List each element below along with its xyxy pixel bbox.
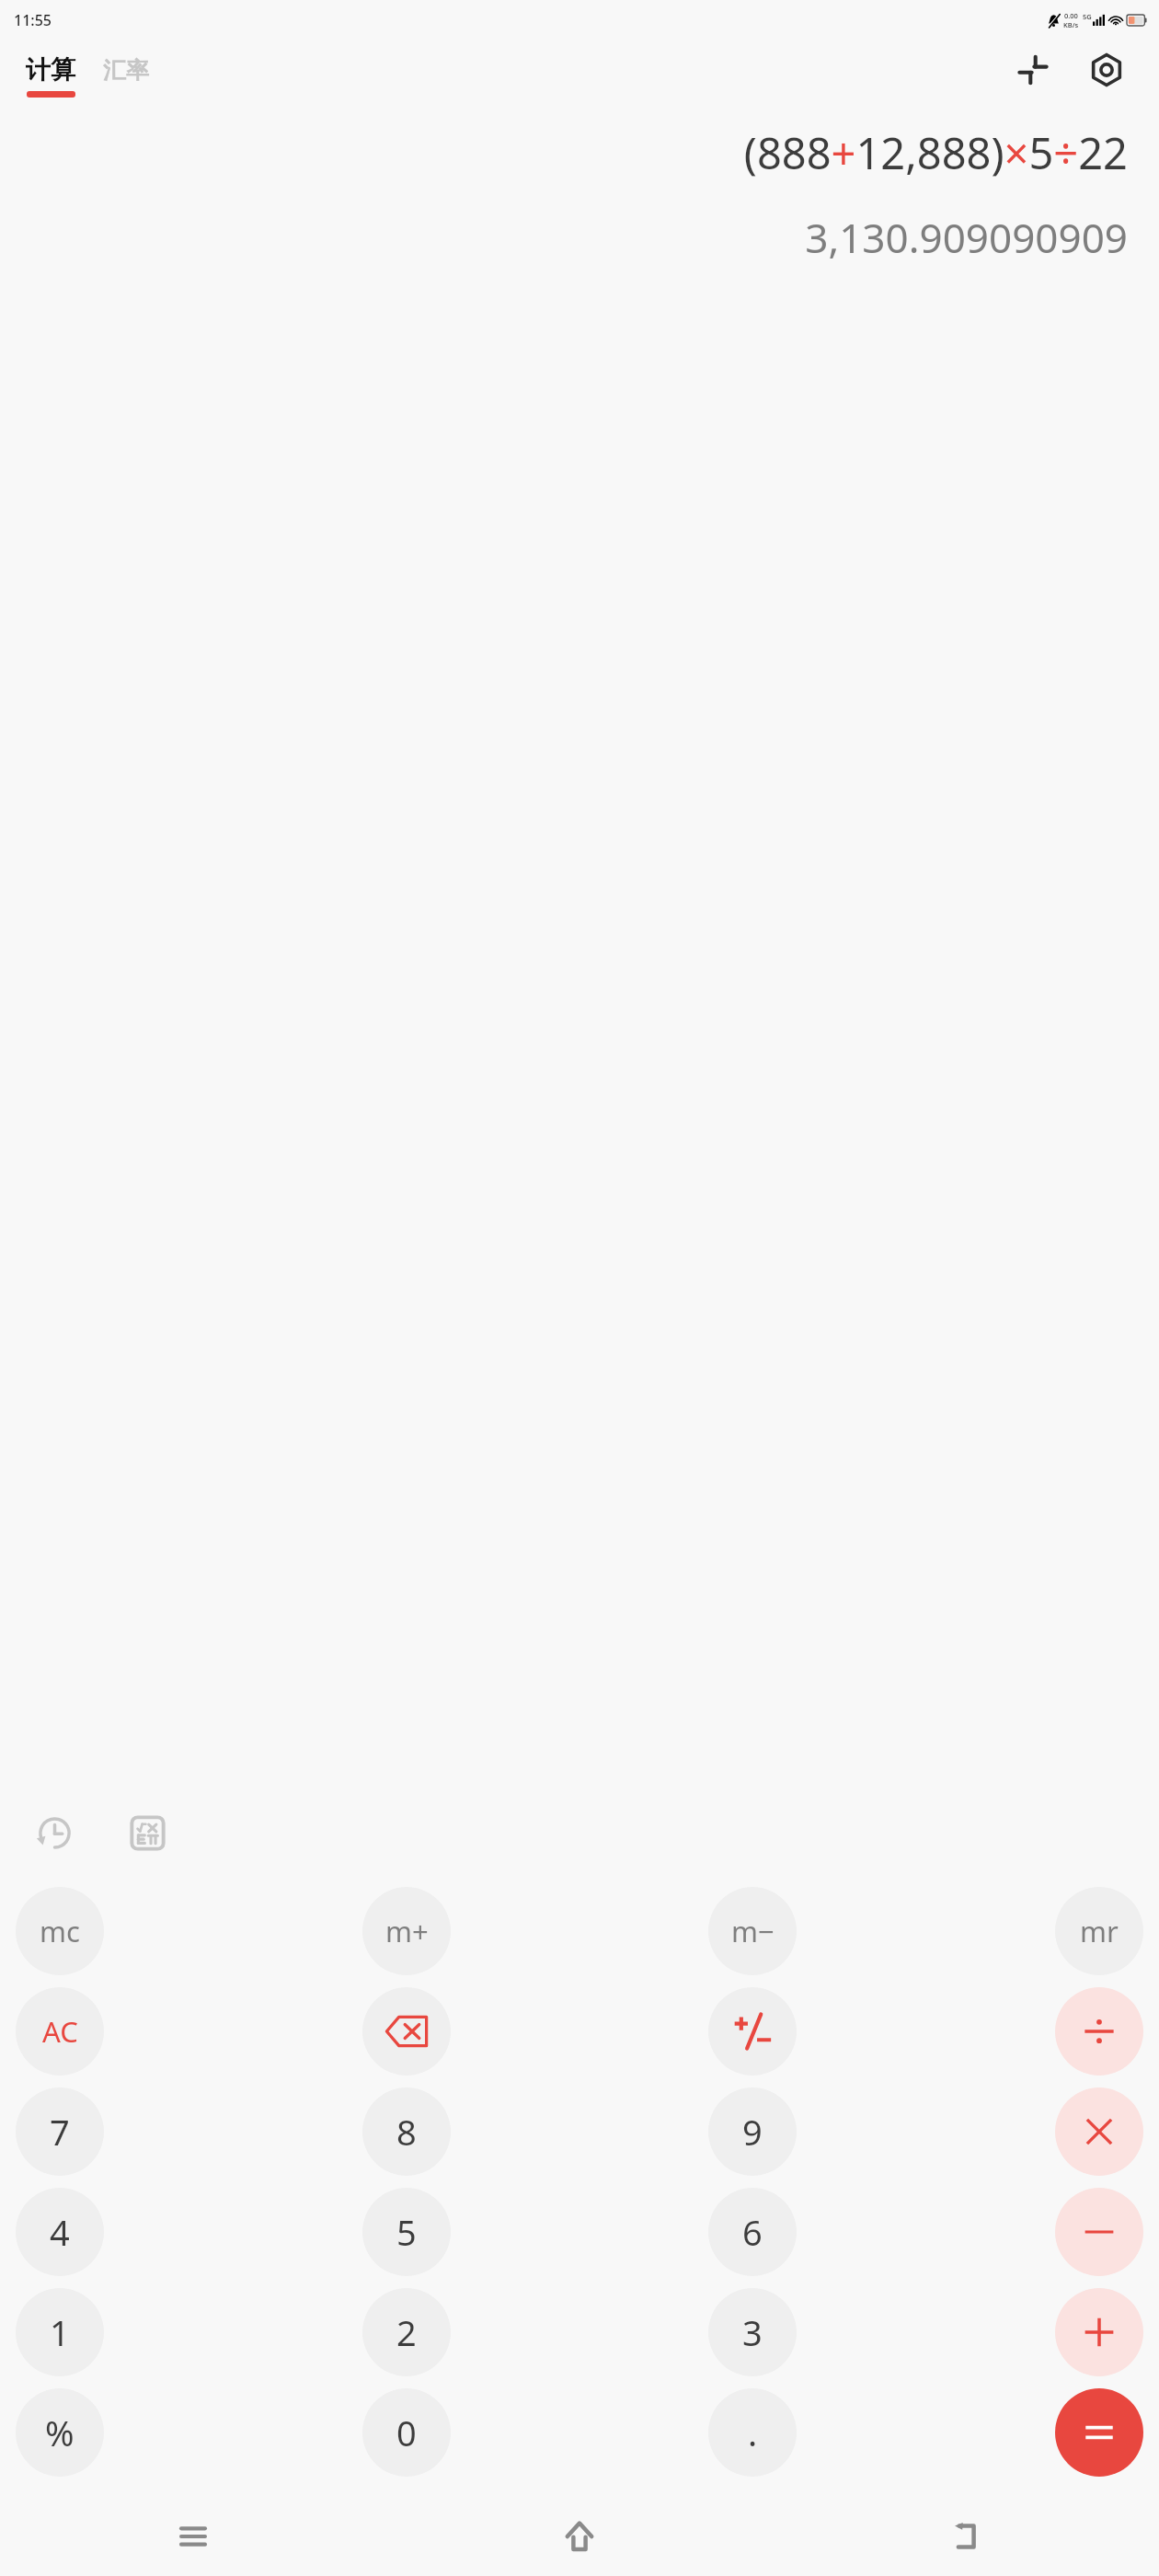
button[interactable]: 3: [708, 2288, 797, 2376]
staticText: 1: [50, 2308, 70, 2356]
staticText: 3,130.909090909: [31, 210, 1128, 265]
button[interactable]: Plus minus: [708, 1987, 797, 2076]
staticText: 6: [742, 2208, 763, 2256]
button[interactable]: Backspace: [362, 1987, 451, 2076]
button[interactable]: [1055, 2188, 1143, 2276]
staticText: 4: [50, 2208, 70, 2256]
staticText: 9: [742, 2108, 763, 2156]
button[interactable]: [1055, 2087, 1143, 2176]
button[interactable]: 5: [362, 2188, 451, 2276]
button[interactable]: 4: [16, 2188, 104, 2276]
button[interactable]: Split screen: [1008, 45, 1058, 95]
staticText: 汇率: [103, 56, 149, 85]
button[interactable]: Home: [543, 2500, 616, 2573]
staticText: 2: [396, 2308, 417, 2356]
button[interactable]: [1055, 2388, 1143, 2477]
button[interactable]: [1055, 2288, 1143, 2376]
button[interactable]: Recents: [156, 2500, 230, 2573]
staticText: 11:55: [14, 10, 52, 30]
staticText: (888+12,888)×5÷22: [31, 123, 1128, 182]
button[interactable]: Back: [929, 2500, 1003, 2573]
staticText: 5: [396, 2208, 417, 2256]
button[interactable]: AC: [16, 1987, 104, 2076]
button[interactable]: .: [708, 2388, 797, 2477]
button[interactable]: 汇率: [99, 62, 153, 90]
staticText: 3: [742, 2308, 763, 2356]
button[interactable]: 0: [362, 2388, 451, 2477]
staticText: KB/s: [1063, 20, 1079, 29]
button[interactable]: 1: [16, 2288, 104, 2376]
staticText: AC: [42, 2012, 78, 2051]
button[interactable]: mr: [1055, 1887, 1143, 1975]
staticText: 计算: [26, 54, 75, 86]
staticText: 0.00: [1064, 11, 1078, 20]
button[interactable]: Scientific: [115, 1800, 179, 1865]
button[interactable]: mc: [16, 1887, 104, 1975]
button[interactable]: 6: [708, 2188, 797, 2276]
button[interactable]: 9: [708, 2087, 797, 2176]
staticText: m+: [385, 1912, 429, 1950]
button[interactable]: %: [16, 2388, 104, 2477]
button[interactable]: Settings: [1082, 45, 1131, 95]
staticText: 0: [396, 2409, 417, 2456]
staticText: 7: [50, 2108, 70, 2156]
button[interactable]: 2: [362, 2288, 451, 2376]
staticText: 5G: [1083, 12, 1092, 21]
button[interactable]: m−: [708, 1887, 797, 1975]
button[interactable]: 7: [16, 2087, 104, 2176]
button[interactable]: 计算: [24, 54, 77, 98]
button[interactable]: History: [22, 1800, 86, 1865]
staticText: .: [748, 2409, 758, 2456]
button[interactable]: [1055, 1987, 1143, 2076]
staticText: mc: [40, 1912, 80, 1950]
staticText: %: [45, 2409, 75, 2456]
button[interactable]: m+: [362, 1887, 451, 1975]
staticText: 8: [396, 2108, 417, 2156]
staticText: mr: [1080, 1912, 1119, 1950]
button[interactable]: 8: [362, 2087, 451, 2176]
staticText: m−: [731, 1912, 775, 1950]
